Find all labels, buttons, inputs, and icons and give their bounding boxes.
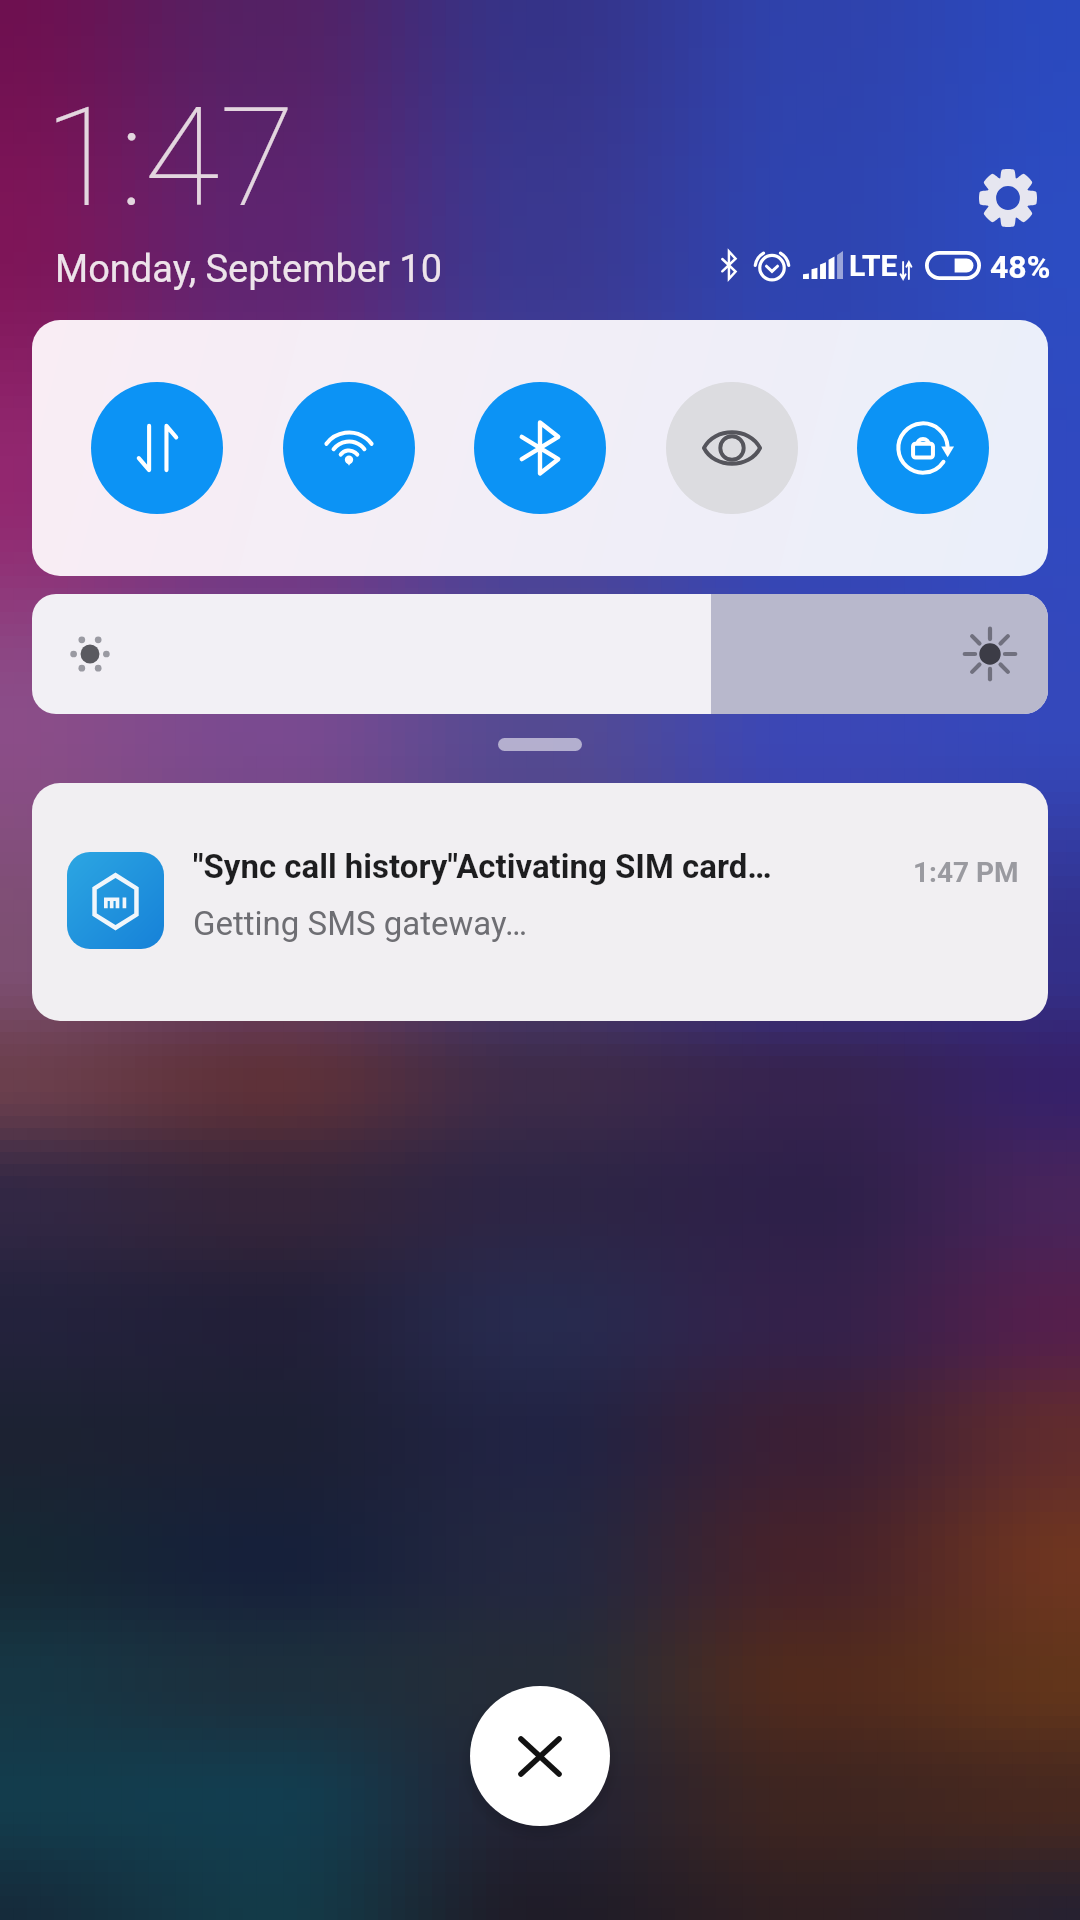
staticText: 1:47 PM <box>913 856 1019 889</box>
button[interactable]: Brightness <box>32 594 1048 714</box>
staticText: 1:47 <box>44 77 296 239</box>
staticText: 48% <box>990 248 1051 282</box>
button[interactable]: Auto-rotate <box>857 382 989 514</box>
staticText: Getting SMS gateway… <box>193 904 527 943</box>
button[interactable]: "Sync call history"Activating SIM card… <box>32 783 1048 1021</box>
button[interactable]: Close <box>470 1686 610 1826</box>
button[interactable]: Wi-Fi <box>283 382 415 514</box>
staticText: LTE <box>849 248 898 282</box>
button[interactable]: Reading mode <box>666 382 798 514</box>
staticText: Monday, September 10 <box>55 247 443 292</box>
staticText: "Sync call history"Activating SIM card… <box>193 847 772 886</box>
button[interactable]: Settings <box>966 156 1050 240</box>
button[interactable]: Bluetooth <box>474 382 606 514</box>
button[interactable]: Mobile data <box>91 382 223 514</box>
